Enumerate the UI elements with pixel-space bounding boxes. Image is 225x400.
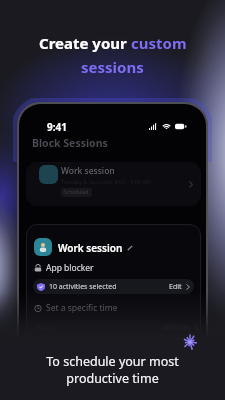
staticText: Set a specific time <box>46 302 118 314</box>
button[interactable]: 10 activities selected <box>33 279 194 294</box>
other: Edit session name <box>127 245 133 251</box>
button[interactable]: Work session <box>26 162 201 206</box>
staticText: 10 activities selected <box>49 282 117 292</box>
other: AI sparkle <box>182 334 198 350</box>
staticText: Scheduled <box>64 189 89 196</box>
staticText: Block Sessions <box>32 136 108 150</box>
staticText: To schedule your most <box>46 353 179 370</box>
staticText: Edit <box>169 282 182 292</box>
staticText: 9:41 <box>47 120 67 132</box>
staticText: productive time <box>66 370 159 387</box>
staticText: custom <box>131 33 187 53</box>
staticText: Work session <box>61 165 115 177</box>
staticText: Create your <box>39 33 131 53</box>
staticText: Tuesday & Saturday, 8:00 - 9:00 AM <box>61 178 152 185</box>
staticText: Work session <box>58 241 123 255</box>
staticText: App blocker <box>46 262 94 274</box>
staticText: sessions <box>81 57 144 77</box>
